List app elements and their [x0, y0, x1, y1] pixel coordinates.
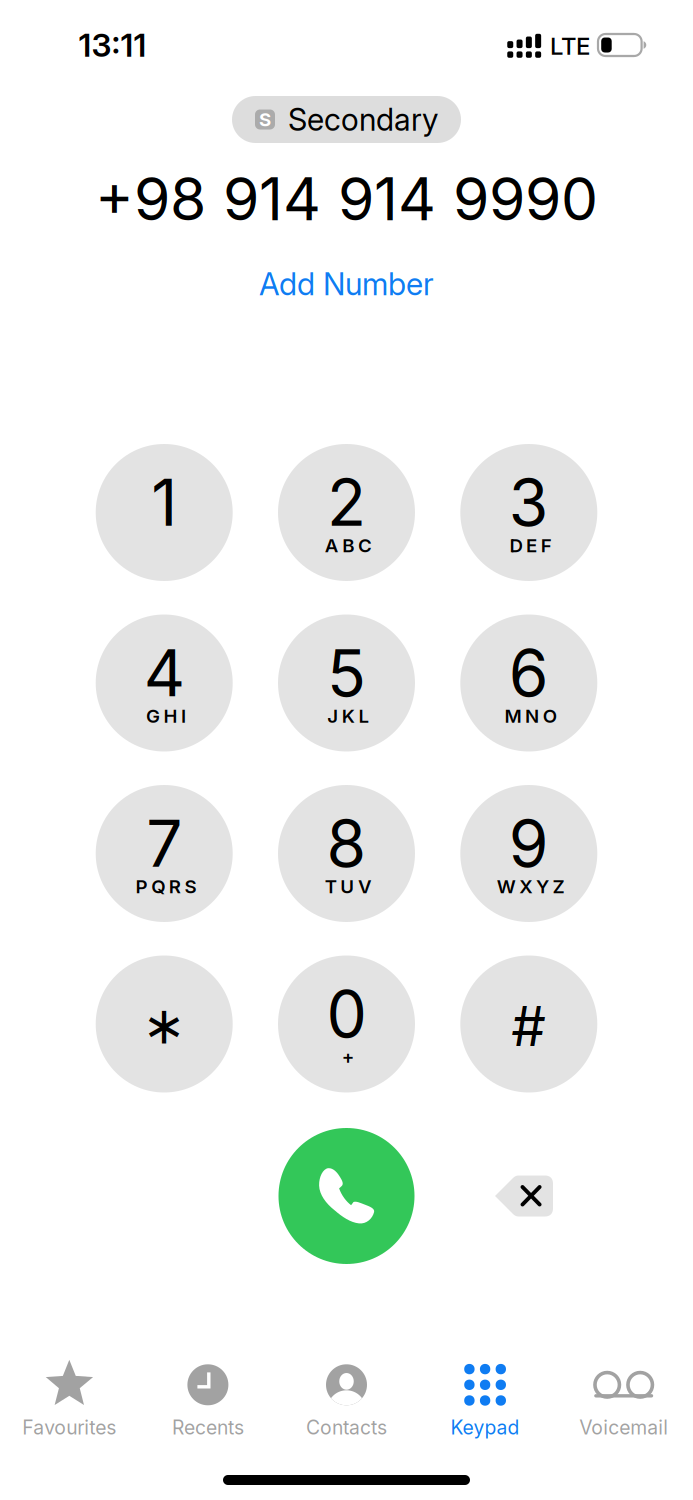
staticText: Secondary — [288, 101, 438, 138]
staticText: WXYZ — [497, 875, 564, 898]
staticText: 6 — [509, 634, 549, 712]
staticText: 3 — [509, 464, 549, 541]
staticText: Recents — [172, 1416, 244, 1439]
staticText: + — [342, 1046, 355, 1068]
staticText: +98 914 914 9990 — [95, 163, 598, 234]
staticText: # — [511, 993, 546, 1059]
button[interactable]: # — [460, 955, 597, 1092]
staticText: 1 — [151, 464, 177, 541]
staticText: Favourites — [22, 1416, 116, 1439]
button[interactable]: Voicemail — [554, 1361, 693, 1439]
staticText: MNO — [504, 705, 557, 727]
staticText: GHI — [146, 705, 186, 727]
staticText: 2 — [327, 464, 366, 541]
staticText: DEF — [509, 534, 552, 557]
staticText: 4 — [144, 634, 185, 712]
button[interactable]: Contacts — [277, 1361, 416, 1439]
button[interactable]: 5 — [278, 614, 415, 751]
button[interactable]: 7 — [96, 785, 233, 922]
staticText: S — [259, 108, 271, 131]
button[interactable]: Favourites — [0, 1361, 139, 1439]
button[interactable]: 4 — [96, 614, 233, 751]
staticText: ABC — [325, 534, 372, 557]
staticText: 0 — [326, 975, 366, 1053]
button[interactable]: 8 — [278, 785, 415, 922]
button[interactable]: 6 — [460, 614, 597, 751]
button[interactable]: 9 — [460, 785, 597, 922]
staticText: Keypad — [451, 1416, 520, 1439]
staticText: 7 — [146, 805, 182, 882]
button[interactable]: 0 — [278, 955, 415, 1092]
staticText: LTE — [550, 31, 590, 60]
button[interactable]: Call — [278, 1128, 414, 1264]
staticText: Voicemail — [579, 1416, 668, 1439]
button[interactable]: 2 — [278, 444, 415, 581]
staticText: Add Number — [259, 265, 434, 302]
staticText: 13:11 — [78, 26, 146, 64]
button[interactable]: Keypad — [416, 1361, 554, 1439]
button[interactable]: Recents — [139, 1361, 277, 1439]
staticText: PQRS — [136, 875, 196, 898]
staticText: 9 — [509, 805, 549, 882]
button[interactable]: 1 — [96, 444, 233, 581]
staticText: 8 — [326, 805, 366, 882]
staticText: ∗ — [142, 995, 186, 1056]
button[interactable]: 3 — [460, 444, 597, 581]
button[interactable]: Delete — [494, 1174, 554, 1217]
staticText: Contacts — [306, 1416, 387, 1439]
staticText: JKL — [327, 705, 369, 727]
staticText: 5 — [327, 634, 366, 712]
button[interactable]: Add Number — [245, 257, 448, 310]
staticText: TUV — [325, 875, 372, 898]
button[interactable]: ∗ — [96, 955, 233, 1092]
